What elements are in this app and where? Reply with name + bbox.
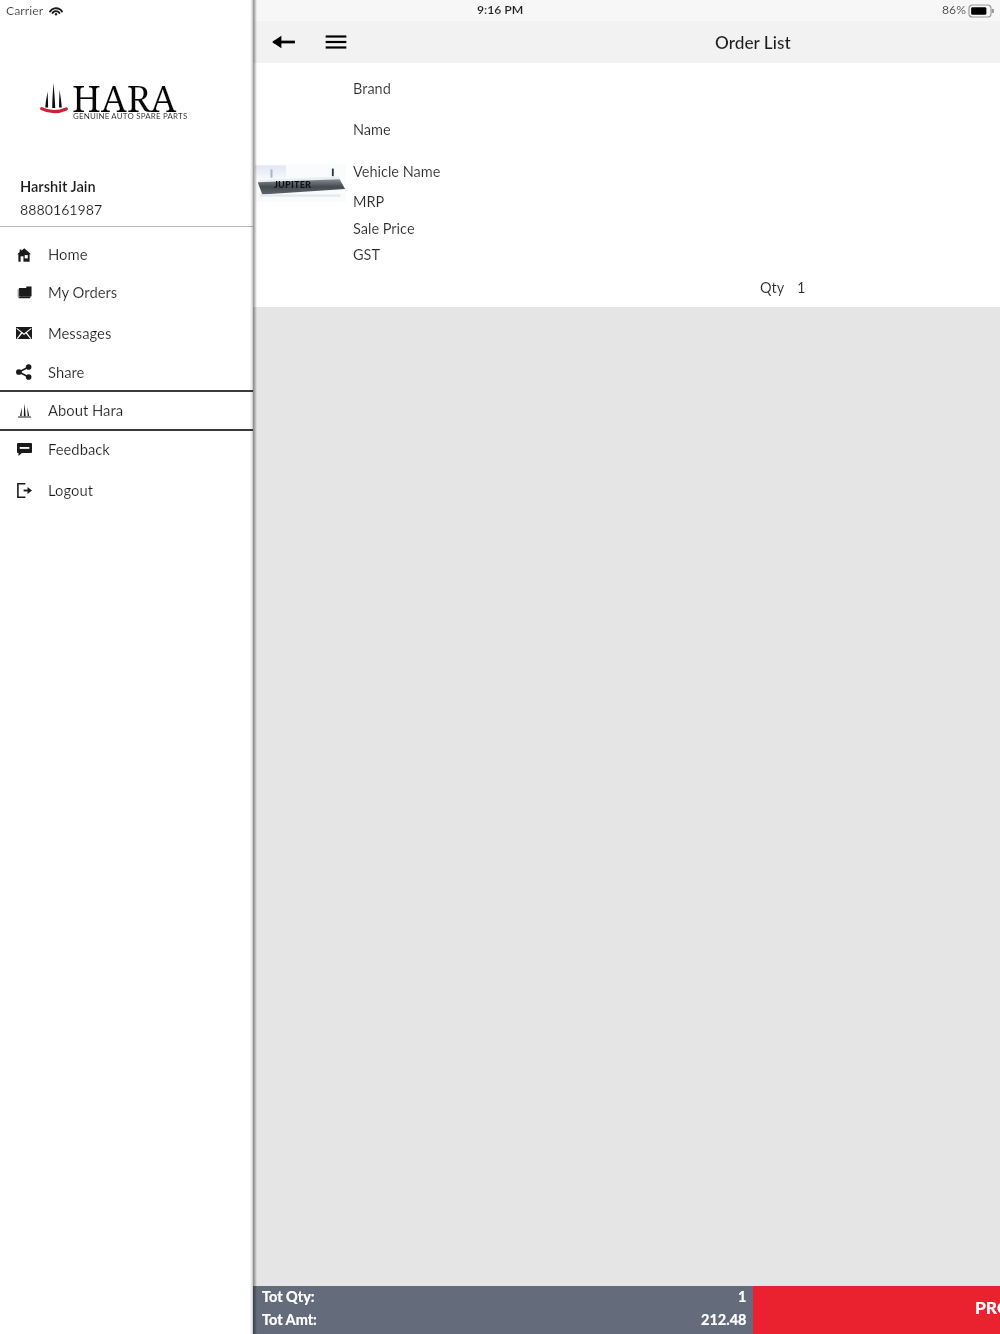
staticText: Logout (48, 481, 93, 499)
staticText: Brand (353, 80, 391, 97)
staticText: 9:16 PM (477, 2, 524, 17)
staticText: Harshit Jain (20, 178, 96, 195)
button[interactable]: PROCEED (753, 1286, 1000, 1334)
button[interactable]: Share (0, 350, 253, 390)
staticText: 212.48 (701, 1311, 747, 1328)
staticText: Order List (715, 32, 791, 53)
staticText: Tot Amt: (262, 1311, 317, 1328)
staticText: 1 (738, 1288, 747, 1305)
staticText: Share (48, 363, 85, 381)
button[interactable]: My Orders (0, 268, 253, 309)
staticText: Name (353, 121, 391, 138)
staticText: Carrier (6, 3, 44, 18)
staticText: HARA (72, 73, 177, 121)
button[interactable]: About Hara (0, 392, 253, 429)
staticText: JUPITER (274, 179, 312, 190)
staticText: Tot Qty: (262, 1288, 315, 1305)
button[interactable]: Back (263, 21, 305, 63)
staticText: GENUINE AUTO SPARE PARTS (73, 111, 188, 120)
staticText: PROCEED (975, 1297, 1000, 1318)
staticText: Messages (48, 324, 112, 342)
staticText: 86% (942, 2, 966, 17)
staticText: My Orders (48, 283, 118, 301)
button[interactable]: Logout (0, 470, 253, 510)
button[interactable]: Home (0, 227, 253, 268)
staticText: GST (353, 246, 381, 263)
staticText: About Hara (48, 401, 124, 419)
staticText: 8880161987 (20, 201, 103, 218)
staticText: Home (48, 245, 88, 263)
staticText: Feedback (48, 440, 110, 458)
button[interactable]: Messages (0, 309, 253, 350)
staticText: 1 (797, 279, 806, 296)
staticText: Qty (760, 279, 785, 296)
button[interactable]: Feedback (0, 431, 253, 470)
staticText: Sale Price (353, 220, 415, 237)
button[interactable]: Menu (315, 21, 357, 63)
staticText: MRP (353, 193, 385, 210)
staticText: Vehicle Name (353, 163, 441, 180)
button[interactable]: Tot Qty: (253, 1286, 753, 1334)
